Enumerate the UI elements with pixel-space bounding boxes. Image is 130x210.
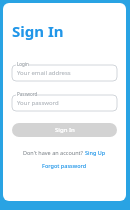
staticText: Your email address bbox=[17, 69, 71, 77]
button[interactable]: Sign In bbox=[12, 123, 117, 137]
staticText: Sign In bbox=[12, 21, 64, 41]
staticText: Login bbox=[17, 61, 29, 67]
staticText: Sing Up bbox=[85, 149, 106, 156]
button[interactable]: Sing Up bbox=[85, 149, 106, 156]
staticText: Don't have an account? bbox=[23, 149, 85, 156]
button[interactable]: Login bbox=[12, 61, 117, 81]
button[interactable]: Password bbox=[12, 91, 117, 111]
staticText: Password bbox=[17, 91, 38, 97]
staticText: Your password bbox=[17, 99, 59, 107]
staticText: Sign In bbox=[55, 126, 75, 134]
button[interactable]: Forgot password bbox=[42, 162, 87, 169]
staticText: Forgot password bbox=[42, 162, 87, 169]
